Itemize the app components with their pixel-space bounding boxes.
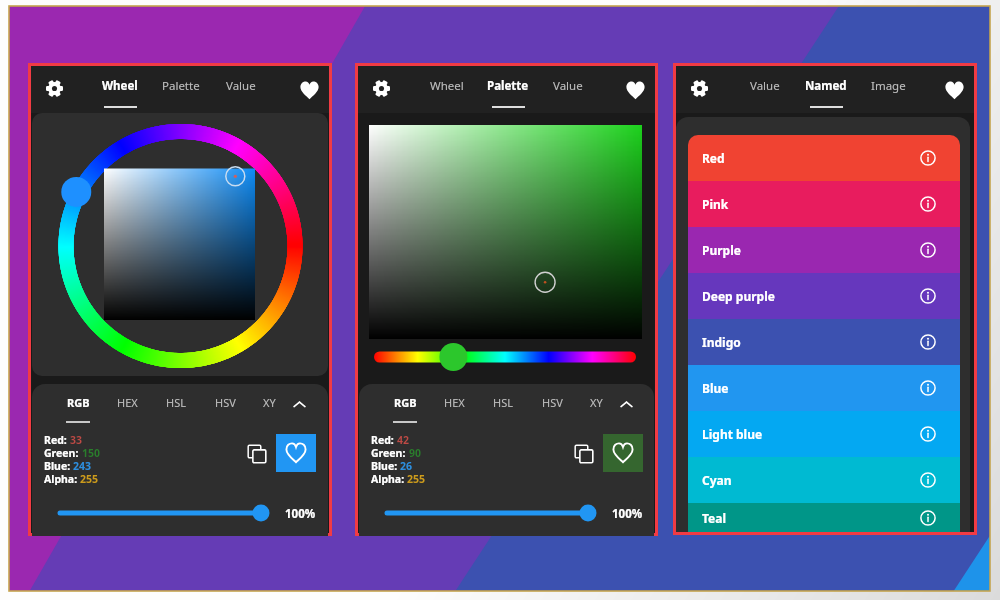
staticText: 33 [70, 433, 83, 446]
button[interactable]: XY [572, 390, 620, 420]
staticText: HSL [493, 395, 513, 410]
staticText: Image [871, 78, 906, 94]
staticText: Wheel [102, 78, 138, 94]
button[interactable]: Wheel [415, 66, 479, 113]
button[interactable]: Info [920, 426, 936, 442]
button[interactable]: Light blue [688, 411, 960, 457]
button[interactable]: Info [920, 242, 936, 258]
staticText: 90 [409, 446, 422, 459]
button[interactable]: Info [920, 288, 936, 304]
button[interactable]: Favorites [932, 68, 976, 112]
staticText: Palette [162, 78, 200, 94]
staticText: RGB [394, 395, 417, 410]
button[interactable]: Save favorite [603, 434, 643, 472]
staticText: Indigo [702, 334, 741, 350]
button[interactable]: Value [209, 66, 273, 113]
button[interactable]: HSV [201, 390, 249, 420]
staticText: Wheel [430, 78, 464, 94]
staticText: Blue: [371, 459, 400, 472]
staticText: Palette [487, 78, 529, 94]
staticText: HEX [117, 395, 138, 410]
staticText: HEX [444, 395, 465, 410]
staticText: Blue: [44, 459, 73, 472]
button[interactable]: Red [688, 135, 960, 181]
button[interactable]: RGB [54, 390, 102, 420]
button[interactable]: Collapse [284, 389, 314, 419]
button[interactable]: Collapse [611, 389, 641, 419]
button[interactable]: Save favorite [276, 434, 316, 472]
button[interactable]: HSV [528, 390, 576, 420]
button[interactable]: Deep purple [688, 273, 960, 319]
button[interactable]: Value [536, 66, 600, 113]
staticText: Named [805, 78, 847, 94]
button[interactable]: Copy [569, 439, 599, 469]
staticText: HSV [542, 395, 563, 410]
staticText: Teal [702, 510, 727, 526]
staticText: HSL [166, 395, 186, 410]
button[interactable]: HSL [152, 390, 200, 420]
staticText: Cyan [702, 472, 732, 488]
staticText: Green: [44, 446, 82, 459]
button[interactable]: Blue [688, 365, 960, 411]
staticText: 255 [407, 472, 426, 485]
staticText: XY [590, 395, 603, 410]
staticText: Alpha: [371, 472, 407, 485]
staticText: Green: [371, 446, 409, 459]
staticText: Red: [371, 433, 397, 446]
button[interactable]: Image [856, 66, 920, 113]
staticText: Value [750, 78, 780, 94]
staticText: Deep purple [702, 288, 775, 304]
button[interactable]: Info [920, 150, 936, 166]
staticText: Red [702, 150, 725, 166]
button[interactable]: Value [733, 66, 797, 113]
staticText: XY [263, 395, 276, 410]
button[interactable]: Teal [688, 503, 960, 532]
staticText: Alpha: [44, 472, 80, 485]
button[interactable]: Info [920, 472, 936, 488]
staticText: 255 [80, 472, 99, 485]
button[interactable]: HEX [430, 390, 478, 420]
button[interactable]: Palette [476, 66, 540, 113]
button[interactable]: XY [245, 390, 293, 420]
staticText: HSV [215, 395, 236, 410]
button[interactable]: HSL [479, 390, 527, 420]
staticText: 26 [400, 459, 413, 472]
button[interactable]: Purple [688, 227, 960, 273]
staticText: 100% [285, 506, 316, 522]
button[interactable]: Palette [149, 66, 213, 113]
button[interactable]: Indigo [688, 319, 960, 365]
staticText: Red: [44, 433, 70, 446]
staticText: 100% [612, 506, 643, 522]
staticText: Value [226, 78, 256, 94]
button[interactable]: Cyan [688, 457, 960, 503]
button[interactable]: Info [920, 196, 936, 212]
button[interactable]: Settings [32, 66, 76, 110]
staticText: 150 [82, 446, 101, 459]
staticText: RGB [67, 395, 90, 410]
button[interactable]: Settings [359, 66, 403, 110]
staticText: Value [553, 78, 583, 94]
button[interactable]: HEX [103, 390, 151, 420]
button[interactable]: Info [920, 380, 936, 396]
button[interactable]: Pink [688, 181, 960, 227]
button[interactable]: Favorites [287, 68, 331, 112]
button[interactable]: Wheel [88, 66, 152, 113]
button[interactable]: RGB [381, 390, 429, 420]
staticText: Purple [702, 242, 741, 258]
button[interactable]: Info [920, 510, 936, 526]
button[interactable]: Settings [677, 66, 721, 110]
staticText: Blue [702, 380, 729, 396]
staticText: 42 [397, 433, 410, 446]
staticText: 243 [73, 459, 92, 472]
button[interactable]: Copy [242, 439, 272, 469]
button[interactable]: Favorites [613, 68, 657, 112]
staticText: Pink [702, 196, 729, 212]
staticText: Light blue [702, 426, 763, 442]
button[interactable]: Info [920, 334, 936, 350]
button[interactable]: Named [794, 66, 858, 113]
